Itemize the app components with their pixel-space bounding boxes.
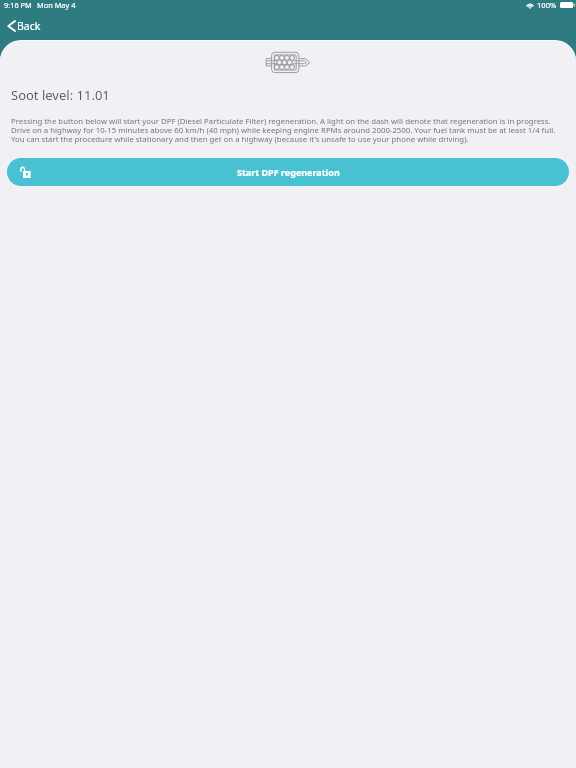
other: Battery 100 percent (560, 2, 575, 8)
staticText: Pressing the button below will start you… (11, 116, 557, 145)
staticText: Back (17, 19, 41, 33)
staticText: Start DPF regeneration (237, 166, 340, 178)
staticText: Soot level: 11.01 (11, 86, 110, 104)
other: Wi-Fi connected (526, 2, 534, 8)
staticText: 100% (537, 0, 557, 10)
staticText: Mon May 4 (37, 0, 76, 10)
other: Back (7, 20, 16, 32)
staticText: 9:16 PM (4, 0, 32, 10)
button[interactable]: Start DPF regeneration (7, 158, 569, 186)
button[interactable]: Back (0, 16, 47, 36)
other: Diesel particulate filter (265, 52, 311, 74)
